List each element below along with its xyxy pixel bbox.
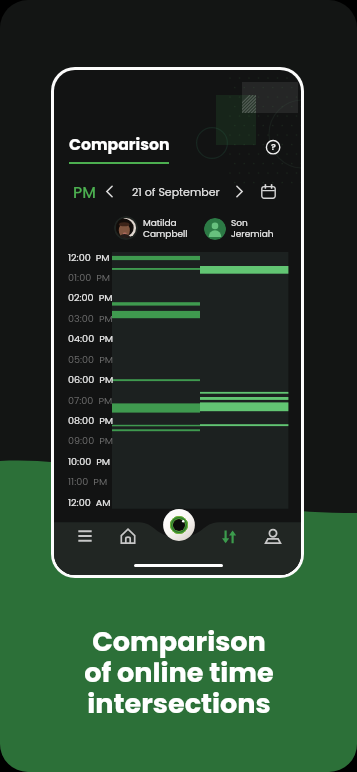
staticText: 21 of September xyxy=(132,184,220,199)
button[interactable]: Sort xyxy=(219,526,239,546)
staticText: Matilda Campbell xyxy=(143,217,188,240)
staticText: Comparison of online time intersections xyxy=(84,623,274,723)
button[interactable]: PM xyxy=(73,182,96,199)
button[interactable]: Previous day xyxy=(102,182,120,200)
staticText: Comparison xyxy=(69,134,170,156)
staticText: 06:00 PM xyxy=(68,373,114,386)
staticText: 12:00 PM xyxy=(68,251,110,264)
staticText: 05:00 PM xyxy=(68,353,114,366)
staticText: 12:00 AM xyxy=(68,496,111,509)
button[interactable]: Help xyxy=(261,135,285,159)
staticText: 11:00 PM xyxy=(68,475,108,488)
staticText: ? xyxy=(271,141,276,154)
staticText: 03:00 PM xyxy=(68,312,113,325)
staticText: 08:00 PM xyxy=(68,414,114,427)
button[interactable]: 21 of September xyxy=(132,183,220,200)
button[interactable]: Home xyxy=(118,526,138,546)
button[interactable]: Next day xyxy=(231,182,249,200)
staticText: 10:00 PM xyxy=(68,455,111,468)
button[interactable]: Son Jeremiah xyxy=(204,217,274,240)
staticText: Son Jeremiah xyxy=(231,217,274,240)
staticText: 07:00 PM xyxy=(68,394,113,407)
button[interactable]: Comparison xyxy=(69,134,170,164)
staticText: PM xyxy=(73,182,96,199)
button[interactable]: Pick date xyxy=(257,180,279,202)
staticText: 02:00 PM xyxy=(68,291,113,304)
staticText: 04:00 PM xyxy=(68,332,114,345)
button[interactable]: Matilda Campbell xyxy=(114,216,188,240)
button[interactable]: Compare online time xyxy=(161,507,197,543)
button[interactable]: Menu xyxy=(75,526,95,546)
button[interactable]: Profile xyxy=(263,526,283,546)
staticText: 01:00 PM xyxy=(68,271,111,284)
staticText: 09:00 PM xyxy=(68,434,114,447)
